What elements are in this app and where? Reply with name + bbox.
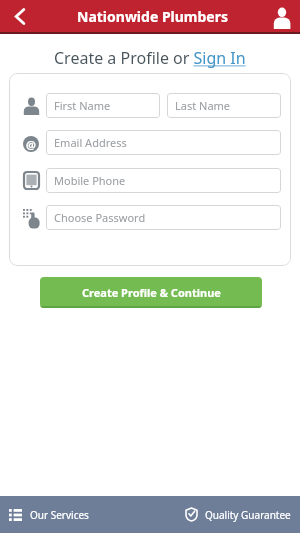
button[interactable]: Nationwide Plumbers xyxy=(0,0,300,32)
staticText: Mobile Phone xyxy=(54,173,126,188)
staticText: Choose Password xyxy=(54,210,146,225)
staticText: Quality Guarantee xyxy=(205,508,291,522)
button[interactable]: Choose Password xyxy=(46,205,281,230)
button[interactable]: Mobile Phone xyxy=(46,168,281,193)
button[interactable]: First Name xyxy=(46,93,160,118)
button[interactable]: Create a Profile or Sign In xyxy=(54,47,246,69)
staticText: Nationwide Plumbers xyxy=(77,7,229,26)
staticText: Our Services xyxy=(30,508,89,522)
staticText: @ xyxy=(26,137,36,152)
staticText: First Name xyxy=(54,98,111,113)
button[interactable]: Create Profile & Continue xyxy=(40,277,262,308)
button[interactable]: Quality Guarantee xyxy=(185,507,291,522)
staticText: Last Name xyxy=(175,98,231,113)
button[interactable] xyxy=(14,8,26,25)
button[interactable]: Email Address xyxy=(46,130,281,155)
staticText: Create Profile & Continue xyxy=(82,285,221,300)
button[interactable] xyxy=(272,5,293,29)
staticText: Email Address xyxy=(54,135,127,150)
button[interactable]: Our Services xyxy=(9,508,89,522)
button[interactable]: Last Name xyxy=(167,93,281,118)
